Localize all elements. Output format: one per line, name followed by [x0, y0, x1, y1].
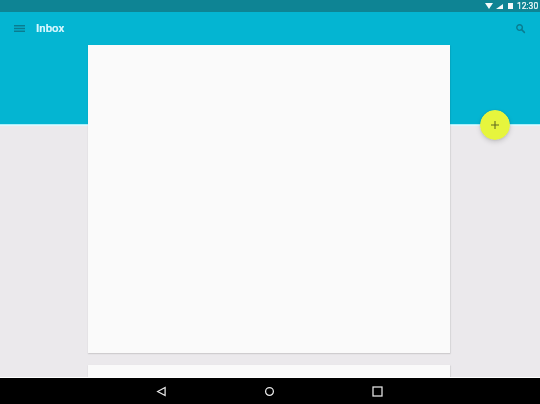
button[interactable]: Home: [236, 378, 302, 404]
button[interactable]: Compose new message: [480, 110, 510, 140]
staticText: 12:30: [517, 1, 539, 11]
staticText: Inbox: [36, 21, 65, 34]
staticText: Weekly digest: [100, 375, 160, 386]
button[interactable]: Back: [128, 378, 194, 404]
button[interactable]: Search: [508, 16, 532, 40]
button[interactable]: Weekly digest: [88, 365, 450, 387]
button[interactable]: Recent apps: [344, 378, 410, 404]
button[interactable]: Open navigation drawer: [6, 16, 32, 40]
